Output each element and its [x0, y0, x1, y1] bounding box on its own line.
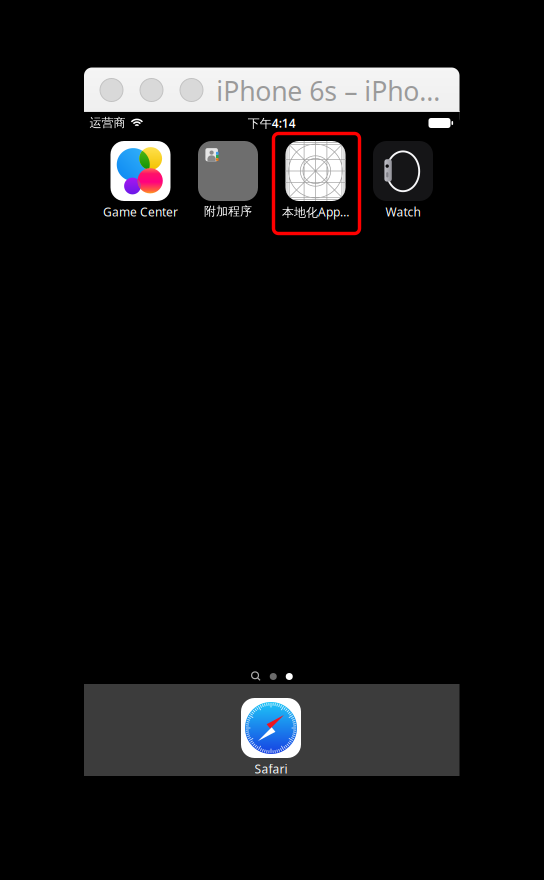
staticText: iPhone 6s – iPho…	[216, 73, 440, 108]
button[interactable]: Minimise window	[140, 78, 163, 101]
staticText: Game Center	[103, 204, 178, 220]
staticText: Watch	[385, 204, 420, 220]
staticText: 运营商	[89, 115, 125, 130]
button[interactable]: Close window	[100, 78, 123, 101]
button[interactable]: 本地化App…	[274, 141, 356, 220]
staticText: Safari	[254, 761, 287, 777]
button[interactable]: 附加程序	[187, 141, 269, 219]
staticText: 附加程序	[204, 204, 252, 219]
button[interactable]: Safari	[230, 698, 312, 777]
button[interactable]: Zoom window	[180, 78, 203, 101]
staticText: 下午4:14	[248, 115, 296, 131]
button[interactable]: Watch	[362, 141, 444, 220]
staticText: 本地化App…	[282, 204, 349, 220]
button[interactable]: Game Center	[99, 141, 181, 220]
